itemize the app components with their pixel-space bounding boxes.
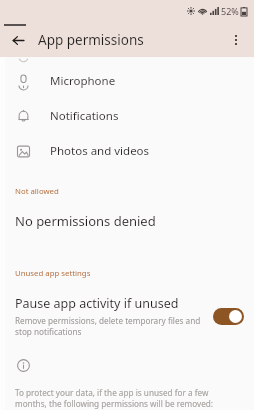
staticText: Microphone (50, 73, 116, 89)
button[interactable]: Back (5, 27, 31, 53)
staticText: Not allowed (15, 186, 59, 197)
button[interactable]: More options (223, 27, 249, 53)
staticText: 52% (221, 5, 239, 17)
staticText: App permissions (38, 31, 144, 49)
button[interactable]: Microphone (0, 63, 254, 98)
staticText: Photos and videos (50, 143, 150, 159)
button[interactable]: Pause app activity if unused (0, 293, 254, 339)
button[interactable]: Photos and videos (0, 133, 254, 168)
staticText: Pause app activity if unused (15, 295, 179, 312)
staticText: No permissions denied (15, 212, 156, 230)
button[interactable]: Notifications (0, 98, 254, 133)
staticText: To protect your data, if the app is unus… (15, 387, 241, 410)
button[interactable]: Pause app activity if unused toggle (213, 308, 244, 325)
staticText: Remove permissions, delete temporary fil… (15, 315, 205, 337)
staticText: Unused app settings (15, 268, 91, 279)
staticText: Notifications (50, 108, 119, 124)
